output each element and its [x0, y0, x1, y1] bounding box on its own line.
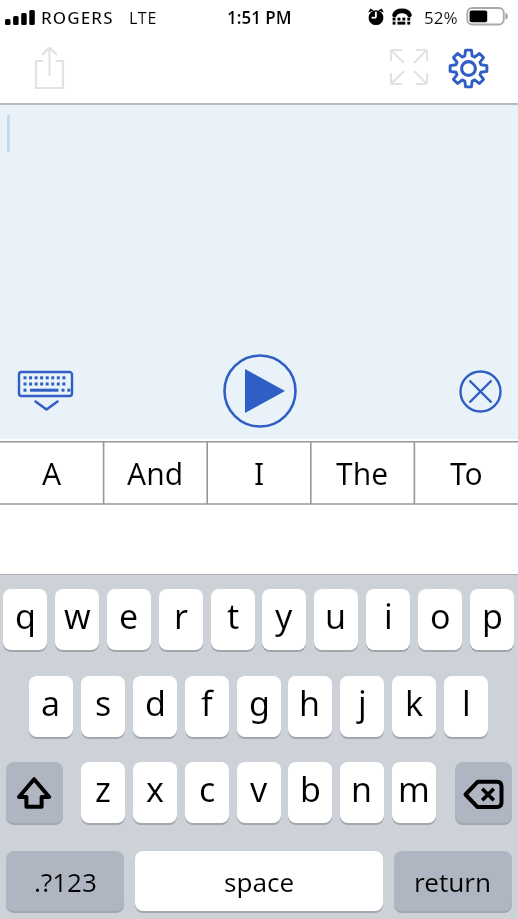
staticText: s [95, 680, 112, 726]
staticText: .?123 [34, 864, 97, 899]
staticText: o [430, 593, 451, 639]
button[interactable]: x [133, 762, 177, 823]
staticText: f [201, 680, 213, 726]
staticText: d [145, 680, 166, 726]
button[interactable]: b [288, 762, 332, 823]
button[interactable] [458, 369, 503, 414]
staticText: w [64, 593, 91, 639]
staticText: return [414, 864, 492, 899]
button[interactable]: u [314, 589, 358, 650]
staticText: LTE [129, 7, 158, 29]
button[interactable] [388, 47, 430, 87]
button[interactable]: return [394, 851, 512, 911]
button[interactable]: e [107, 589, 151, 650]
staticText: x [146, 766, 164, 812]
staticText: ROGERS [41, 6, 114, 29]
button[interactable]: A [0, 443, 104, 503]
button[interactable]: To [414, 443, 518, 503]
staticText: e [119, 593, 139, 639]
staticText: y [275, 593, 293, 639]
button[interactable] [6, 762, 63, 823]
staticText: A [42, 453, 62, 494]
button[interactable]: The [310, 443, 414, 503]
button[interactable]: a [29, 676, 73, 737]
button[interactable]: w [55, 589, 99, 650]
staticText: I [254, 453, 265, 494]
button[interactable]: And [103, 443, 207, 503]
button[interactable]: t [211, 589, 255, 650]
staticText: j [358, 680, 367, 726]
staticText: To [450, 453, 483, 494]
button[interactable]: y [262, 589, 306, 650]
staticText: t [227, 593, 240, 639]
button[interactable]: h [288, 676, 332, 737]
staticText: c [199, 766, 216, 812]
button[interactable]: i [366, 589, 410, 650]
button[interactable]: k [392, 676, 436, 737]
staticText: a [41, 680, 61, 726]
button[interactable]: .?123 [6, 851, 124, 911]
staticText: z [95, 766, 111, 812]
staticText: v [250, 766, 268, 812]
button[interactable]: s [81, 676, 125, 737]
staticText: q [15, 593, 36, 639]
staticText: k [405, 680, 424, 726]
button[interactable]: r [159, 589, 203, 650]
staticText: And [127, 453, 184, 494]
button[interactable] [447, 47, 490, 90]
button[interactable]: q [3, 589, 47, 650]
staticText: g [249, 680, 270, 726]
staticText: p [482, 593, 503, 639]
button[interactable]: v [237, 762, 281, 823]
button[interactable]: c [185, 762, 229, 823]
staticText: u [325, 593, 347, 639]
staticText: b [300, 766, 321, 812]
button[interactable]: z [81, 762, 125, 823]
staticText: n [351, 766, 373, 812]
staticText: space [224, 864, 295, 899]
button[interactable] [455, 762, 512, 823]
button[interactable]: I [207, 443, 311, 503]
staticText: h [299, 680, 321, 726]
button[interactable] [24, 40, 76, 98]
staticText: i [384, 593, 393, 639]
staticText: 1:51 PM [227, 6, 292, 29]
staticText: 52% [424, 6, 458, 29]
button[interactable]: g [237, 676, 281, 737]
staticText: The [336, 453, 389, 494]
button[interactable]: o [418, 589, 462, 650]
button[interactable]: p [470, 589, 514, 650]
staticText: m [398, 766, 430, 812]
button[interactable]: space [135, 851, 383, 911]
button[interactable]: l [444, 676, 488, 737]
staticText: r [174, 593, 189, 639]
button[interactable] [13, 366, 79, 416]
button[interactable]: f [185, 676, 229, 737]
button[interactable]: j [340, 676, 384, 737]
staticText: l [462, 680, 471, 726]
button[interactable]: m [392, 762, 436, 823]
button[interactable] [221, 352, 299, 430]
button[interactable]: n [340, 762, 384, 823]
button[interactable]: d [133, 676, 177, 737]
